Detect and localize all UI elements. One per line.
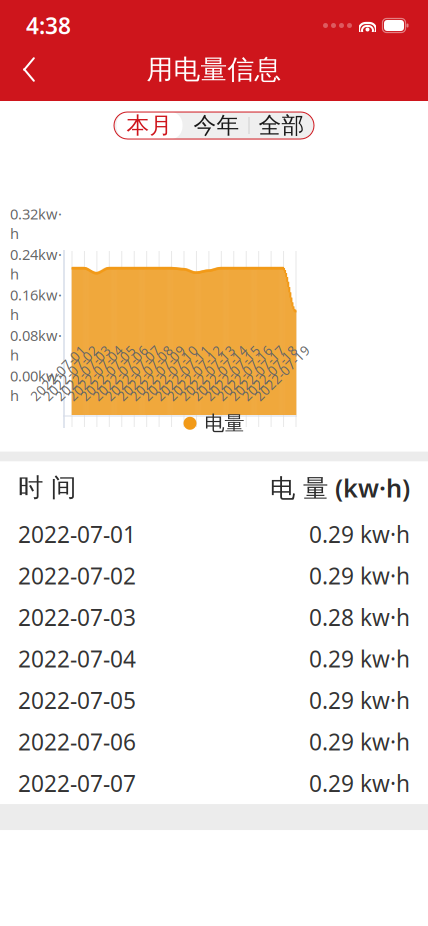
- staticText: 2022-07-09: [122, 364, 194, 382]
- staticText: 0.29 kw·h: [309, 727, 410, 757]
- staticText: 2022-07-13: [171, 364, 243, 382]
- button[interactable]: 2022-07-03: [0, 597, 428, 638]
- staticText: 0.32kw·h: [10, 204, 62, 243]
- staticText: 0.29 kw·h: [309, 644, 410, 674]
- staticText: 0.29 kw·h: [309, 768, 410, 798]
- staticText: 0.00kw·h: [10, 366, 62, 405]
- staticText: 2022-07-04: [59, 364, 131, 382]
- staticText: 时 间: [18, 472, 76, 503]
- staticText: 2022-07-01: [22, 364, 94, 382]
- staticText: 2022-07-01: [18, 519, 136, 549]
- staticText: 2022-07-03: [18, 602, 136, 632]
- button[interactable]: 2022-07-02: [0, 555, 428, 597]
- staticText: 0.08kw·h: [10, 325, 62, 364]
- staticText: 2022-07-08: [109, 364, 181, 382]
- staticText: 2022-07-03: [47, 364, 119, 382]
- button[interactable]: 本月: [114, 109, 184, 141]
- staticText: 0.16kw·h: [10, 285, 62, 324]
- staticText: 0.24kw·h: [10, 244, 62, 283]
- staticText: 2022-07-06: [18, 727, 136, 757]
- staticText: 0.29 kw·h: [309, 685, 410, 715]
- staticText: 2022-07-06: [84, 364, 156, 382]
- staticText: 2022-07-17: [221, 364, 293, 382]
- staticText: 2022-07-05: [18, 685, 136, 715]
- staticText: 2022-07-12: [159, 364, 231, 382]
- button[interactable]: 2022-07-07: [0, 763, 428, 804]
- staticText: 4:38: [26, 10, 71, 40]
- staticText: 2022-07-05: [72, 364, 144, 382]
- staticText: 2022-07-18: [234, 364, 306, 382]
- staticText: 0.29 kw·h: [309, 561, 410, 591]
- button[interactable]: 2022-07-05: [0, 680, 428, 721]
- staticText: 2022-07-02: [18, 561, 136, 591]
- button[interactable]: Back: [0, 44, 50, 94]
- staticText: 2022-07-07: [97, 364, 169, 382]
- button[interactable]: 今年: [184, 112, 248, 138]
- staticText: 电 量 (kw·h): [270, 471, 410, 504]
- staticText: 0.28 kw·h: [309, 602, 410, 632]
- staticText: 2022-07-10: [134, 364, 206, 382]
- staticText: 2022-07-07: [18, 768, 136, 798]
- button[interactable]: 2022-07-06: [0, 721, 428, 763]
- staticText: 用电量信息: [146, 53, 281, 86]
- staticText: 2022-07-04: [18, 644, 136, 674]
- staticText: 今年: [193, 112, 239, 139]
- staticText: 2022-07-16: [209, 364, 281, 382]
- staticText: 2022-07-19: [246, 364, 318, 382]
- staticText: 2022-07-02: [34, 364, 106, 382]
- button[interactable]: 全部: [249, 112, 313, 138]
- button[interactable]: 2022-07-01: [0, 514, 428, 555]
- staticText: 全部: [258, 112, 304, 139]
- staticText: 0.29 kw·h: [309, 519, 410, 549]
- staticText: 2022-07-15: [196, 364, 268, 382]
- staticText: 电量: [204, 411, 244, 436]
- staticText: 本月: [126, 112, 172, 139]
- button[interactable]: 2022-07-04: [0, 638, 428, 680]
- staticText: 2022-07-11: [146, 364, 218, 382]
- staticText: 2022-07-14: [184, 364, 256, 382]
